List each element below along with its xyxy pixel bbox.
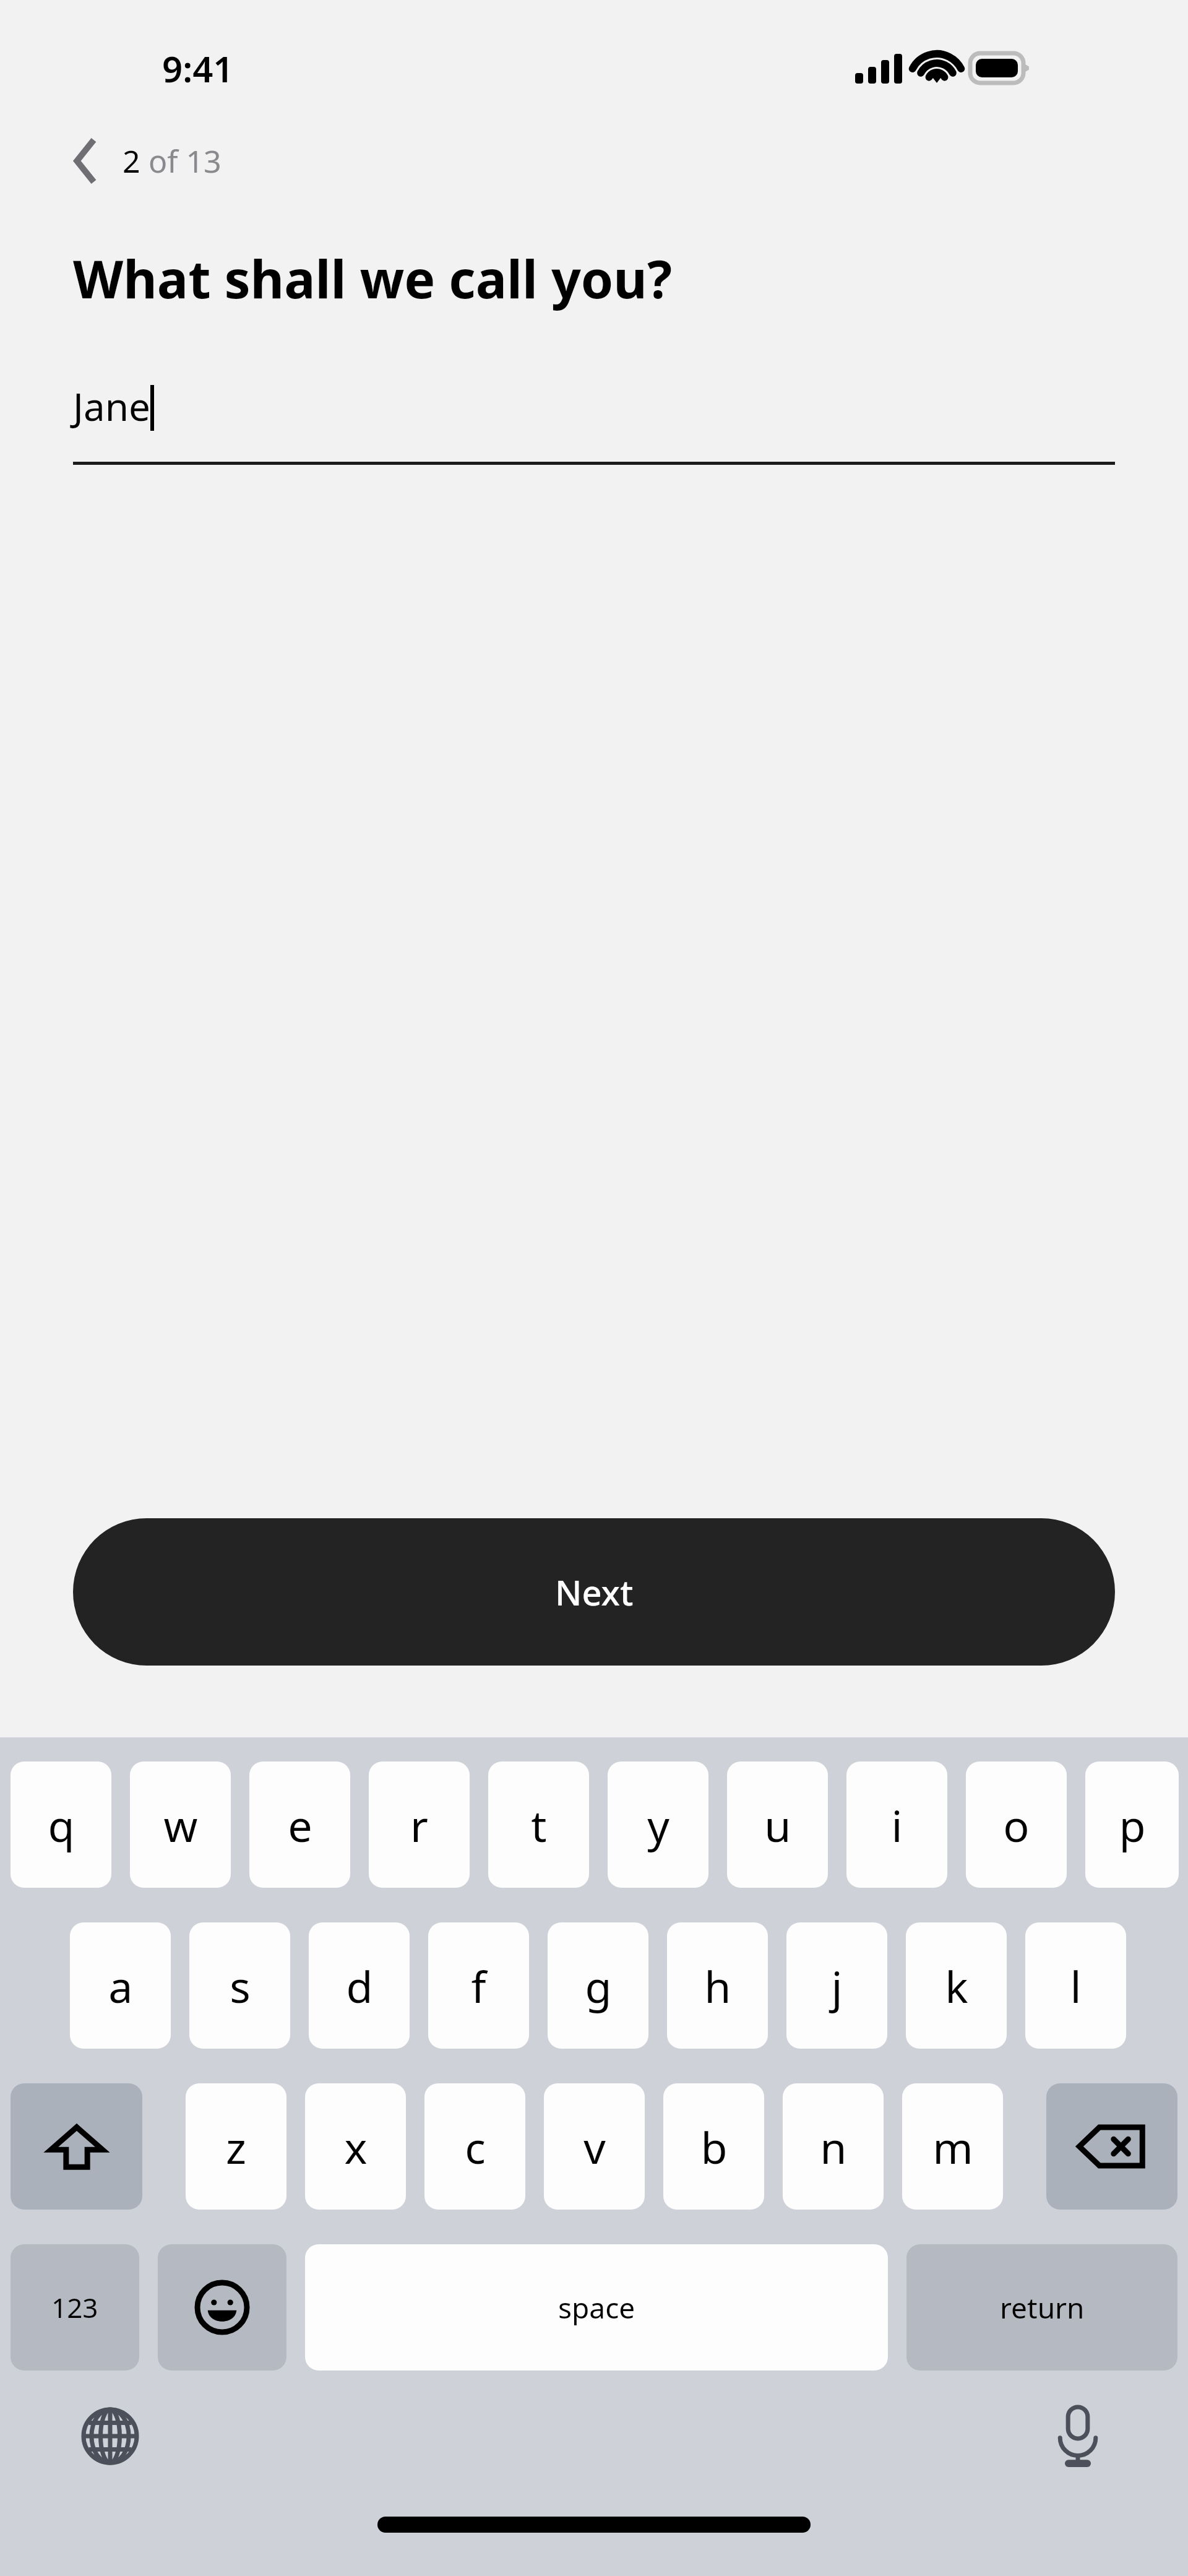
button[interactable]: q	[11, 1761, 111, 1888]
button[interactable]: w	[130, 1761, 231, 1888]
staticText: p	[1119, 1796, 1146, 1854]
staticText: m	[932, 2117, 973, 2176]
button[interactable]: Backspace	[1046, 2083, 1177, 2210]
staticText: q	[48, 1796, 75, 1854]
button[interactable]: f	[428, 1922, 529, 2049]
staticText: c	[465, 2117, 486, 2176]
staticText: f	[471, 1956, 486, 2015]
staticText: Jane	[73, 380, 150, 432]
button[interactable]: b	[663, 2083, 764, 2210]
staticText: a	[108, 1956, 133, 2015]
button[interactable]: t	[488, 1761, 589, 1888]
staticText: y	[647, 1796, 669, 1854]
button[interactable]: z	[186, 2083, 286, 2210]
staticText: 9:41	[162, 44, 234, 93]
button[interactable]: n	[783, 2083, 884, 2210]
button[interactable]: Next	[73, 1518, 1115, 1666]
button[interactable]: u	[727, 1761, 828, 1888]
staticText: Next	[555, 1568, 634, 1615]
staticText: of 13	[140, 140, 222, 182]
button[interactable]: r	[369, 1761, 470, 1888]
staticText: return	[1000, 2288, 1085, 2327]
button[interactable]: Emoji	[158, 2244, 286, 2371]
button[interactable]: v	[544, 2083, 645, 2210]
staticText: z	[226, 2117, 246, 2176]
staticText: e	[288, 1796, 312, 1854]
button[interactable]: a	[70, 1922, 171, 2049]
staticText: x	[344, 2117, 368, 2176]
staticText: l	[1070, 1956, 1082, 2015]
button[interactable]: y	[608, 1761, 708, 1888]
staticText: t	[531, 1796, 547, 1854]
staticText: i	[891, 1796, 903, 1854]
button[interactable]: s	[189, 1922, 290, 2049]
staticText: v	[583, 2117, 606, 2176]
staticText: s	[230, 1956, 251, 2015]
button[interactable]: Dictation	[1043, 2401, 1113, 2471]
staticText: r	[410, 1796, 428, 1854]
button[interactable]: h	[667, 1922, 768, 2049]
staticText: g	[585, 1956, 612, 2015]
staticText: w	[163, 1796, 198, 1854]
button[interactable]: return	[906, 2244, 1177, 2371]
button[interactable]: m	[902, 2083, 1003, 2210]
button[interactable]: 123	[11, 2244, 139, 2371]
staticText: space	[558, 2288, 635, 2327]
button[interactable]: x	[305, 2083, 406, 2210]
button[interactable]: space	[305, 2244, 888, 2371]
button[interactable]: l	[1025, 1922, 1126, 2049]
staticText: j	[831, 1956, 843, 2015]
button[interactable]: j	[786, 1922, 887, 2049]
staticText: h	[704, 1956, 731, 2015]
button[interactable]: o	[966, 1761, 1067, 1888]
staticText: 123	[51, 2289, 98, 2326]
button[interactable]: Jane	[73, 380, 1115, 465]
button[interactable]: p	[1085, 1761, 1179, 1888]
button[interactable]: Shift	[11, 2083, 142, 2210]
staticText: d	[346, 1956, 373, 2015]
other: Back	[73, 147, 101, 175]
button[interactable]: d	[309, 1922, 410, 2049]
staticText: 2	[123, 140, 140, 182]
button[interactable]: Back	[0, 128, 1188, 194]
button[interactable]: k	[906, 1922, 1007, 2049]
button[interactable]: c	[424, 2083, 525, 2210]
staticText: What shall we call you?	[73, 243, 673, 313]
staticText: o	[1003, 1796, 1030, 1854]
staticText: b	[700, 2117, 728, 2176]
button[interactable]: e	[249, 1761, 350, 1888]
button[interactable]: i	[846, 1761, 947, 1888]
staticText: k	[945, 1956, 968, 2015]
staticText: u	[764, 1796, 791, 1854]
button[interactable]: g	[548, 1922, 648, 2049]
staticText: n	[820, 2117, 847, 2176]
button[interactable]: Next keyboard	[75, 2401, 145, 2471]
